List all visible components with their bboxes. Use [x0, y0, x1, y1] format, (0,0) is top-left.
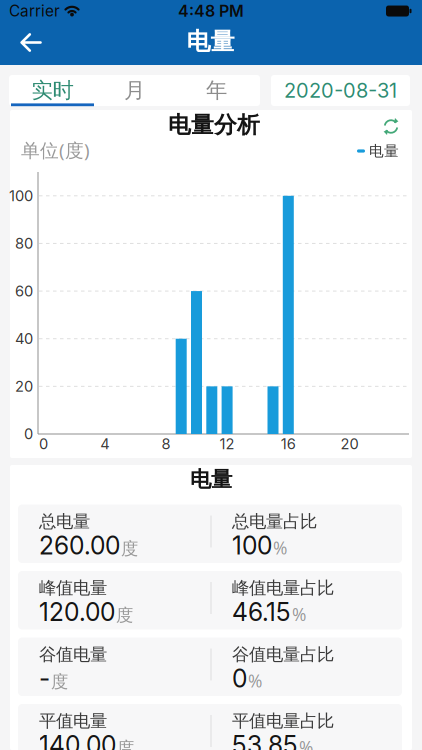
staticText: - — [39, 664, 50, 693]
staticText: 53.85 — [232, 730, 298, 750]
staticText: % — [248, 669, 262, 692]
staticText: 60 — [15, 282, 33, 300]
staticText: 0 — [39, 435, 48, 453]
staticText: 总电量 — [39, 511, 90, 532]
staticText: 260.00 — [39, 531, 120, 560]
staticText: 谷值电量 — [39, 644, 107, 665]
staticText: 平值电量 — [39, 710, 107, 732]
staticText: 月 — [124, 77, 145, 104]
staticText: 电量 — [369, 142, 399, 160]
staticText: 40 — [15, 330, 33, 347]
staticText: 120.00 — [39, 597, 115, 627]
staticText: 电量分析 — [168, 111, 260, 139]
staticText: 度 — [117, 738, 134, 750]
staticText: 4 — [100, 435, 109, 453]
staticText: 总电量占比 — [232, 511, 317, 532]
staticText: 100 — [232, 531, 272, 560]
staticText: 年 — [206, 77, 227, 104]
staticText: 2020-08-31 — [284, 78, 397, 103]
staticText: 谷值电量占比 — [232, 644, 334, 665]
staticText: 4:48 PM — [178, 1, 244, 21]
staticText: 80 — [15, 235, 33, 252]
staticText: 峰值电量占比 — [232, 577, 334, 599]
staticText: % — [299, 736, 313, 750]
staticText: Carrier — [9, 2, 60, 20]
staticText: % — [273, 536, 287, 559]
staticText: 8 — [161, 435, 170, 453]
staticText: 电量 — [186, 27, 234, 56]
staticText: 度 — [121, 538, 138, 559]
staticText: 16 — [281, 435, 296, 453]
staticText: 100 — [9, 187, 33, 205]
staticText: 电量 — [190, 466, 232, 493]
button[interactable]: 2020-08-31 — [271, 75, 410, 106]
staticText: 46.15 — [232, 597, 291, 627]
staticText: 单位(度) — [21, 138, 90, 162]
staticText: 0 — [24, 425, 33, 443]
staticText: 12 — [220, 435, 235, 453]
staticText: 峰值电量 — [39, 577, 107, 599]
staticText: 20 — [340, 435, 358, 453]
staticText: 度 — [116, 605, 133, 626]
button[interactable]: 年 — [175, 75, 258, 106]
staticText: 平值电量占比 — [232, 710, 334, 732]
staticText: 实时 — [31, 77, 73, 104]
staticText: 140.00 — [39, 730, 116, 750]
staticText: % — [292, 603, 306, 626]
staticText: 度 — [51, 671, 68, 692]
staticText: 20 — [15, 377, 33, 395]
button[interactable]: 实时 — [11, 75, 94, 106]
staticText: 0 — [232, 664, 247, 693]
button[interactable]: 月 — [93, 75, 176, 106]
button[interactable]: Back — [9, 22, 53, 62]
button[interactable]: Refresh — [378, 113, 404, 139]
